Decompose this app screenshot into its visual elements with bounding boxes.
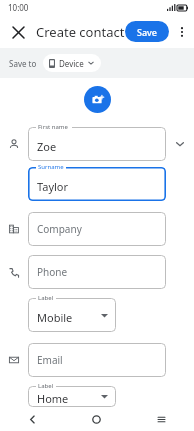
staticText: Mobile xyxy=(37,310,73,325)
staticText: Device xyxy=(59,58,84,69)
button[interactable]: Mobile xyxy=(28,298,116,332)
staticText: Label xyxy=(38,382,54,390)
button[interactable]: Email xyxy=(28,343,166,377)
button[interactable]: Zoe xyxy=(28,127,166,161)
button[interactable]: Recent apps xyxy=(129,407,194,431)
button[interactable]: Home xyxy=(64,407,129,431)
button[interactable]: More options xyxy=(172,21,192,43)
button[interactable]: Back xyxy=(0,407,64,431)
staticText: Home xyxy=(37,391,69,406)
button[interactable]: Expand name fields xyxy=(166,130,194,158)
button[interactable]: Phone xyxy=(28,255,166,289)
staticText: Label xyxy=(38,294,54,302)
button[interactable]: Close xyxy=(5,19,31,45)
button[interactable]: Save xyxy=(125,21,169,42)
staticText: Save xyxy=(137,26,158,38)
staticText: Company xyxy=(37,222,82,236)
button[interactable]: Add photo xyxy=(84,86,111,113)
button[interactable]: Company xyxy=(28,212,166,246)
button[interactable]: Home xyxy=(28,386,116,407)
staticText: Phone xyxy=(37,265,68,279)
staticText: Zoe xyxy=(37,139,57,154)
staticText: Email xyxy=(37,353,63,367)
staticText: First name xyxy=(38,123,68,131)
staticText: 10:00 xyxy=(8,2,29,13)
staticText: Save to xyxy=(9,58,37,69)
staticText: Create contact xyxy=(36,23,125,41)
button[interactable]: Device xyxy=(43,54,101,72)
staticText: Taylor xyxy=(37,179,69,194)
button[interactable]: Taylor xyxy=(28,167,166,201)
staticText: Surname xyxy=(38,163,64,171)
